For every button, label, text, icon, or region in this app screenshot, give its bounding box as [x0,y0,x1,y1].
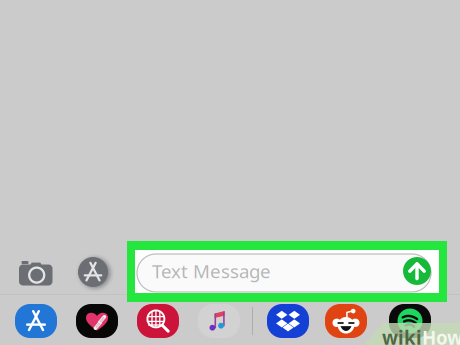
staticText: wiki [382,325,422,345]
button[interactable]: Reddit [325,304,367,338]
button[interactable]: Camera [14,251,58,295]
button[interactable]: Images [137,304,179,338]
button[interactable]: Dropbox [267,304,309,338]
button[interactable]: Stickers [76,304,118,338]
button[interactable]: App Store [15,304,57,338]
button[interactable]: iMessage apps [71,250,115,294]
staticText: How [422,325,460,345]
staticText: Text Message [152,259,271,283]
button[interactable]: Text Message [137,254,431,292]
button[interactable]: Send [403,257,431,285]
button[interactable]: Spotify [389,304,431,338]
button[interactable]: Music [198,304,240,338]
